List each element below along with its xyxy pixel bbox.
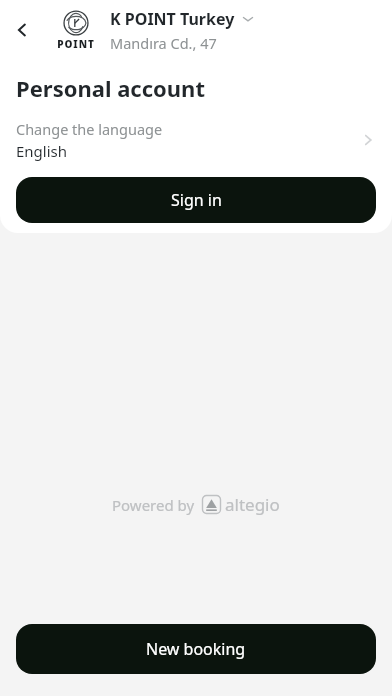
staticText: Change the language — [16, 119, 163, 139]
staticText: Sign in — [171, 189, 222, 211]
button[interactable]: New booking — [16, 624, 376, 674]
button[interactable]: Powered by — [112, 493, 280, 516]
staticText: Powered by — [112, 495, 195, 515]
button[interactable]: Sign in — [16, 177, 376, 223]
button[interactable]: Back — [0, 8, 44, 52]
staticText: Personal account — [16, 73, 205, 103]
staticText: Mandıra Cd., 47 — [110, 33, 217, 53]
staticText: altegio — [225, 493, 280, 516]
staticText: English — [16, 141, 68, 161]
button[interactable]: Change the language — [0, 117, 392, 163]
staticText: POINT — [57, 37, 95, 51]
staticText: K POINT Turkey — [110, 8, 235, 30]
staticText: New booking — [146, 638, 246, 660]
